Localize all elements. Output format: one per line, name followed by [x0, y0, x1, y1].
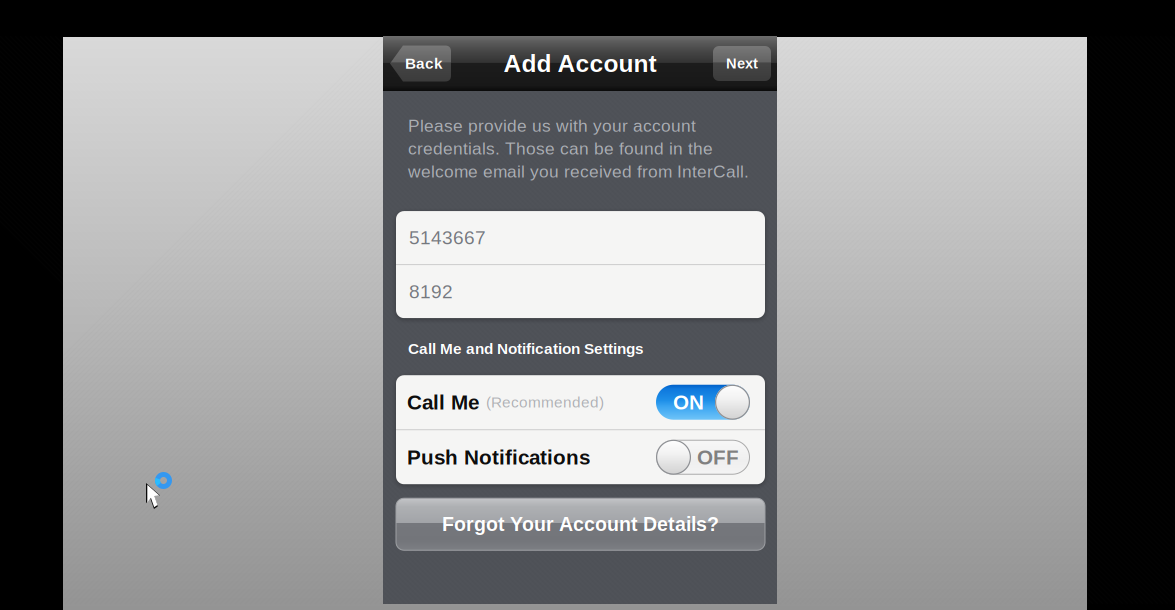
button[interactable]: Next	[713, 46, 771, 81]
button[interactable]: Call Me	[396, 375, 765, 429]
staticText: Next	[726, 55, 758, 72]
staticText: ON	[673, 391, 704, 414]
staticText: credentials. Those can be found in the	[408, 139, 713, 158]
staticText: Back	[405, 55, 443, 72]
button[interactable]: 8192	[396, 265, 765, 318]
button[interactable]: 5143667	[396, 211, 765, 264]
staticText: Forgot Your Account Details?	[442, 513, 719, 535]
staticText: (Recommended)	[486, 394, 604, 411]
staticText: OFF	[697, 446, 739, 469]
button[interactable]: Push Notifications	[396, 430, 765, 484]
staticText: Call Me	[407, 391, 479, 414]
button[interactable]: Forgot Your Account Details?	[396, 498, 765, 550]
staticText: 8192	[409, 281, 453, 302]
staticText: Call Me and Notification Settings	[408, 340, 644, 357]
button[interactable]: Back	[390, 45, 451, 81]
staticText: Push Notifications	[407, 446, 590, 469]
staticText: Add Account	[503, 50, 656, 77]
staticText: 5143667	[409, 227, 486, 248]
staticText: Please provide us with your account	[408, 116, 696, 135]
staticText: welcome email you received from InterCal…	[408, 162, 749, 181]
